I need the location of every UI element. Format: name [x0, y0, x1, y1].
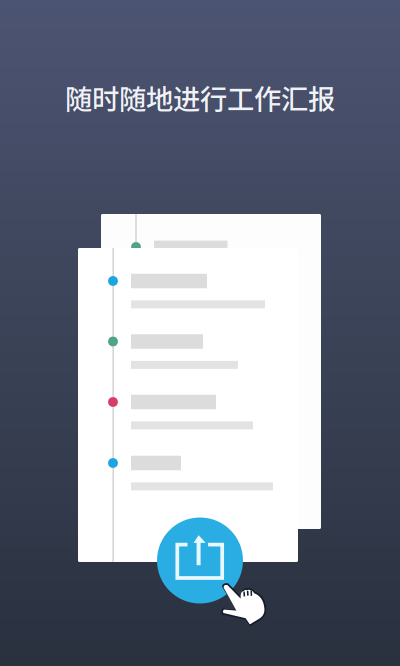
button[interactable]: Upload report	[157, 517, 243, 603]
staticText: 随时随地进行工作汇报	[65, 78, 335, 117]
